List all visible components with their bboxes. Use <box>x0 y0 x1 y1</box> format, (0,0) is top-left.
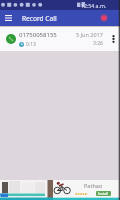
staticText: Pathao <box>84 182 103 189</box>
staticText: 12:54 a.m. <box>81 2 107 9</box>
staticText: 3:26 <box>93 40 103 47</box>
staticText: 0:13 <box>26 41 36 48</box>
button[interactable]: 01750058155 <box>0 27 120 51</box>
button[interactable]: Record <box>96 10 112 26</box>
button[interactable]: More options <box>107 27 120 51</box>
staticText: Record Call <box>22 14 57 23</box>
button[interactable]: Open navigation menu <box>0 10 16 26</box>
staticText: 5 Jun 2017 <box>76 31 103 38</box>
button[interactable]: Install <box>96 191 111 196</box>
button[interactable]: Pathao <box>0 180 120 200</box>
staticText: Install <box>98 191 109 196</box>
staticText: 01750058155 <box>19 31 57 39</box>
